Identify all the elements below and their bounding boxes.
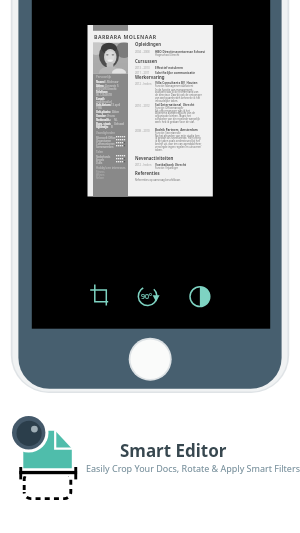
staticText: Gender:: [96, 114, 107, 118]
staticText: 2008 - 2010: [135, 129, 150, 133]
staticText: E-mail:: [96, 97, 105, 101]
staticText: Villa Consultants BV, Houten: [155, 81, 198, 85]
staticText: Hogeschool Utrecht: [155, 53, 180, 57]
staticText: Bodrik Partners, Amsterdam: [155, 128, 198, 132]
staticText: Schriftelijke communicatie: [155, 71, 196, 75]
staticText: Smart Editor: [120, 439, 227, 462]
staticText: Microsoft Office: [96, 136, 116, 140]
staticText: 3581 MR Utrecht: [96, 87, 117, 91]
staticText: Voetbalbank Utrecht: [155, 163, 187, 167]
staticText: Opleidingen: [135, 41, 162, 47]
staticText: Als officemanager was ik het algemene aa…: [155, 109, 202, 124]
staticText: 2011 - 2011: [135, 71, 150, 75]
staticText: 13 april: [111, 103, 121, 107]
staticText: B: [111, 125, 113, 129]
staticText: Easily Crop Your Docs, Rotate & Apply Sm…: [86, 462, 300, 474]
staticText: Adres:: [96, 84, 105, 88]
staticText: BARBARA MOLENAAR: [94, 33, 157, 40]
staticText: Communiceren: [96, 142, 115, 146]
staticText: Vrouw: [107, 114, 115, 118]
staticText: Hobby’s en interesses: [96, 166, 126, 170]
staticText: Gehuwd: [114, 122, 125, 126]
staticText: 2012 - heden: [135, 82, 152, 86]
staticText: Organiseren: [96, 139, 112, 143]
staticText: 1986: [96, 106, 102, 110]
staticText: HBO Directiesecretaresse Schoevi: [155, 50, 206, 54]
staticText: mail@mail.nl: [96, 100, 112, 104]
staticText: Geb.plaats:: [96, 110, 111, 114]
staticText: Referenties: [135, 170, 160, 176]
staticText: Duits: [96, 161, 103, 165]
staticText: 06-12345678: [96, 93, 112, 97]
staticText: Effectief notuleren: [155, 66, 184, 70]
staticText: Fitness: [96, 170, 105, 174]
staticText: Nationalit.:: [96, 118, 111, 122]
staticText: 2010 - 2012: [135, 104, 150, 108]
staticText: Talen: [96, 150, 104, 154]
staticText: In de functie van management assistent w…: [155, 88, 202, 103]
staticText: Reizen: [96, 176, 105, 180]
staticText: 2013 - 2013: [135, 66, 150, 70]
staticText: Cursussen: [135, 58, 158, 64]
staticText: Wijnen: [96, 173, 105, 177]
staticText: Vaardigheden: [96, 131, 115, 135]
staticText: Telefoon:: [96, 90, 108, 94]
staticText: NL: [114, 118, 118, 122]
staticText: Geb.datum:: [96, 103, 112, 107]
staticText: Naam:: [96, 80, 105, 84]
staticText: Functie: Vrijwilliger: [155, 166, 179, 170]
staticText: Zonnestr. 5: [105, 84, 119, 88]
staticText: Functie: Management Assistent: [155, 84, 194, 88]
staticText: Werkervaring: [135, 74, 165, 80]
staticText: Persoonlijk: [96, 75, 112, 79]
staticText: Functie: Officemanager: [155, 106, 184, 110]
staticText: 90°: [141, 292, 153, 302]
staticText: Samenwerken: [96, 145, 114, 149]
staticText: Nederlands: [96, 155, 111, 159]
staticText: A’dam: [112, 110, 120, 114]
staticText: Referenties op aanvraag beschikbaar.: [135, 178, 181, 182]
staticText: Soil International, Utrecht: [155, 103, 195, 107]
staticText: Engels: [96, 158, 105, 162]
staticText: Rijbewijs:: [96, 125, 109, 129]
staticText: Functie: Secretaresse: [155, 131, 181, 135]
staticText: Na het afronden van mijn studie ben ik g…: [155, 134, 202, 152]
staticText: Nevenactiviteiten: [135, 155, 174, 161]
staticText: 2004 - 2008: [135, 50, 150, 54]
staticText: 2012 - heden: [135, 163, 152, 167]
staticText: B. Molenaar: [104, 80, 119, 84]
staticText: Burg. staat:: [96, 122, 111, 126]
